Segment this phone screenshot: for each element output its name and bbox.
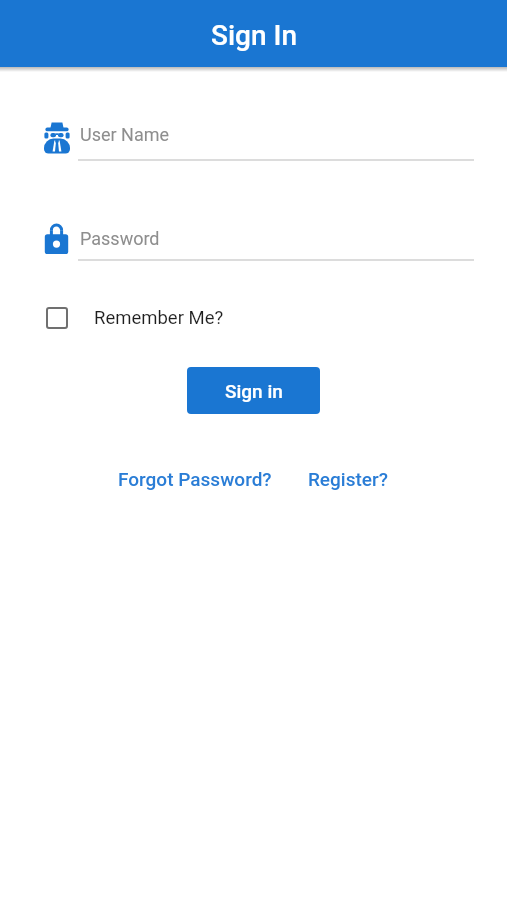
staticText: Forgot Password? bbox=[118, 468, 272, 490]
staticText: Sign in bbox=[225, 380, 283, 402]
staticText: Sign In bbox=[211, 19, 297, 52]
staticText: Register? bbox=[308, 468, 388, 490]
staticText: Remember Me? bbox=[94, 307, 224, 329]
button[interactable]: User Name bbox=[40, 114, 476, 162]
staticText: User Name bbox=[80, 124, 170, 145]
button[interactable]: Sign in bbox=[187, 367, 320, 414]
button[interactable]: Password bbox=[40, 216, 476, 264]
button[interactable]: Remember Me? bbox=[40, 300, 300, 336]
button[interactable]: Register? bbox=[308, 462, 388, 496]
staticText: Password bbox=[80, 228, 160, 249]
button[interactable]: Forgot Password? bbox=[118, 462, 272, 496]
